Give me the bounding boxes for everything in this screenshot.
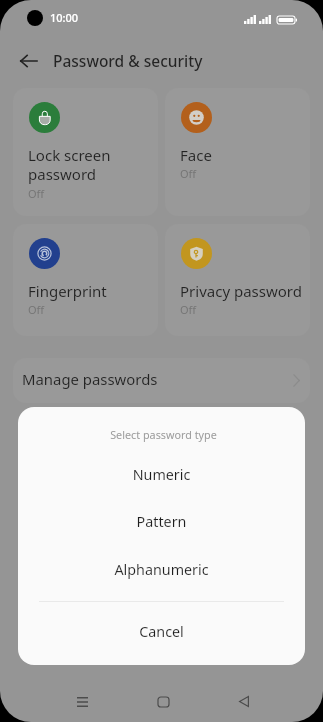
button[interactable]: Back bbox=[11, 43, 46, 78]
staticText: Select password type bbox=[20, 427, 305, 442]
button[interactable]: Home bbox=[142, 680, 185, 722]
staticText: Off bbox=[180, 166, 197, 181]
staticText: Cancel bbox=[18, 622, 305, 641]
staticText: Alphanumeric bbox=[18, 560, 305, 579]
staticText: Numeric bbox=[18, 465, 305, 484]
button[interactable]: Manage passwords bbox=[13, 358, 310, 403]
staticText: Off bbox=[180, 302, 197, 317]
button[interactable]: Lock screen password bbox=[13, 88, 158, 216]
staticText: Privacy password bbox=[180, 281, 302, 301]
staticText: Off bbox=[28, 302, 45, 317]
staticText: Pattern bbox=[18, 512, 305, 531]
staticText: Fingerprint bbox=[28, 281, 107, 301]
button[interactable]: Numeric bbox=[18, 450, 305, 495]
button[interactable]: Back bbox=[222, 680, 265, 722]
staticText: Manage passwords bbox=[22, 369, 158, 389]
button[interactable]: Pattern bbox=[18, 497, 305, 542]
button[interactable]: Alphanumeric bbox=[18, 545, 305, 590]
button[interactable]: Recent apps bbox=[61, 680, 104, 722]
button[interactable]: Privacy password bbox=[165, 224, 310, 336]
staticText: 10:00 bbox=[50, 10, 79, 25]
button[interactable]: Face bbox=[165, 88, 310, 216]
staticText: Password & security bbox=[53, 50, 203, 71]
button[interactable]: Fingerprint bbox=[13, 224, 158, 336]
staticText: Lock screen password bbox=[28, 145, 111, 185]
staticText: Off bbox=[28, 186, 45, 201]
staticText: Face bbox=[180, 145, 212, 165]
button[interactable]: Cancel bbox=[18, 607, 305, 652]
